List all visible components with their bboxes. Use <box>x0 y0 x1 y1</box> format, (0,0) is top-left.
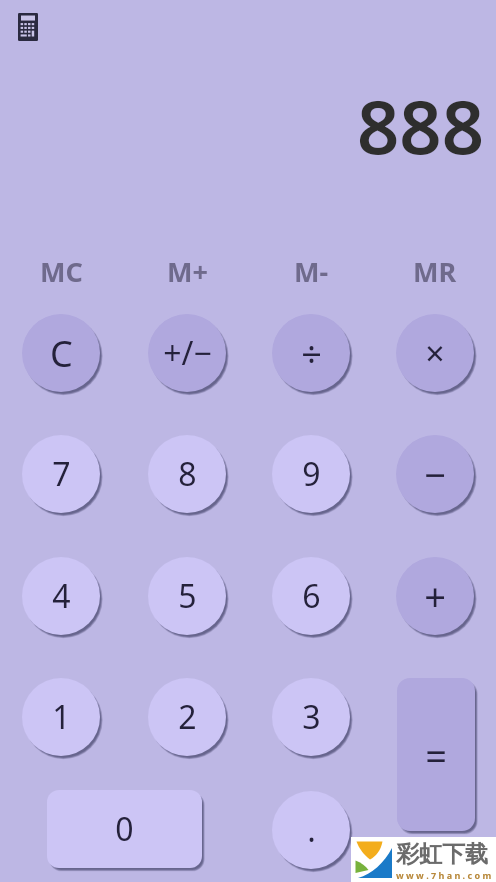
button[interactable]: = <box>397 678 475 831</box>
staticText: 2 <box>178 695 197 739</box>
button[interactable]: C <box>22 314 100 392</box>
staticText: 彩虹下载 <box>396 840 488 869</box>
staticText: 9 <box>302 452 321 496</box>
staticText: C <box>50 329 73 378</box>
staticText: MR <box>413 253 457 287</box>
button[interactable]: 3 <box>272 678 350 756</box>
staticText: 8 <box>178 452 197 496</box>
button[interactable]: 5 <box>148 557 226 635</box>
button[interactable]: MC <box>19 253 103 287</box>
staticText: w w w . 7 h a n . c o m <box>396 869 492 881</box>
button[interactable]: × <box>396 314 474 392</box>
button[interactable]: M+ <box>145 253 229 287</box>
staticText: ÷ <box>301 329 322 378</box>
button[interactable]: 8 <box>148 435 226 513</box>
button[interactable]: Calculator <box>18 13 38 41</box>
button[interactable]: +/− <box>148 314 226 392</box>
button[interactable]: 9 <box>272 435 350 513</box>
button[interactable]: . <box>272 791 350 869</box>
button[interactable]: MR <box>393 253 477 287</box>
staticText: 3 <box>302 695 321 739</box>
staticText: M+ <box>167 253 208 287</box>
staticText: × <box>425 330 445 376</box>
staticText: 4 <box>52 574 71 618</box>
button[interactable]: 7 <box>22 435 100 513</box>
button[interactable]: − <box>396 435 474 513</box>
button[interactable]: 6 <box>272 557 350 635</box>
button[interactable]: ÷ <box>272 314 350 392</box>
button[interactable]: 4 <box>22 557 100 635</box>
staticText: 7 <box>52 452 71 496</box>
staticText: . <box>307 808 316 852</box>
staticText: = <box>425 729 447 781</box>
staticText: M- <box>294 253 329 287</box>
button[interactable]: 2 <box>148 678 226 756</box>
staticText: 1 <box>52 695 71 739</box>
staticText: 888 <box>357 75 484 155</box>
staticText: 6 <box>302 574 321 618</box>
staticText: + <box>424 570 446 622</box>
button[interactable]: 1 <box>22 678 100 756</box>
staticText: 5 <box>178 574 197 618</box>
button[interactable]: 0 <box>47 790 202 868</box>
staticText: MC <box>40 253 83 287</box>
staticText: +/− <box>163 331 212 375</box>
button[interactable]: + <box>396 557 474 635</box>
button[interactable]: M- <box>269 253 353 287</box>
staticText: − <box>424 448 446 500</box>
staticText: 0 <box>115 807 134 851</box>
